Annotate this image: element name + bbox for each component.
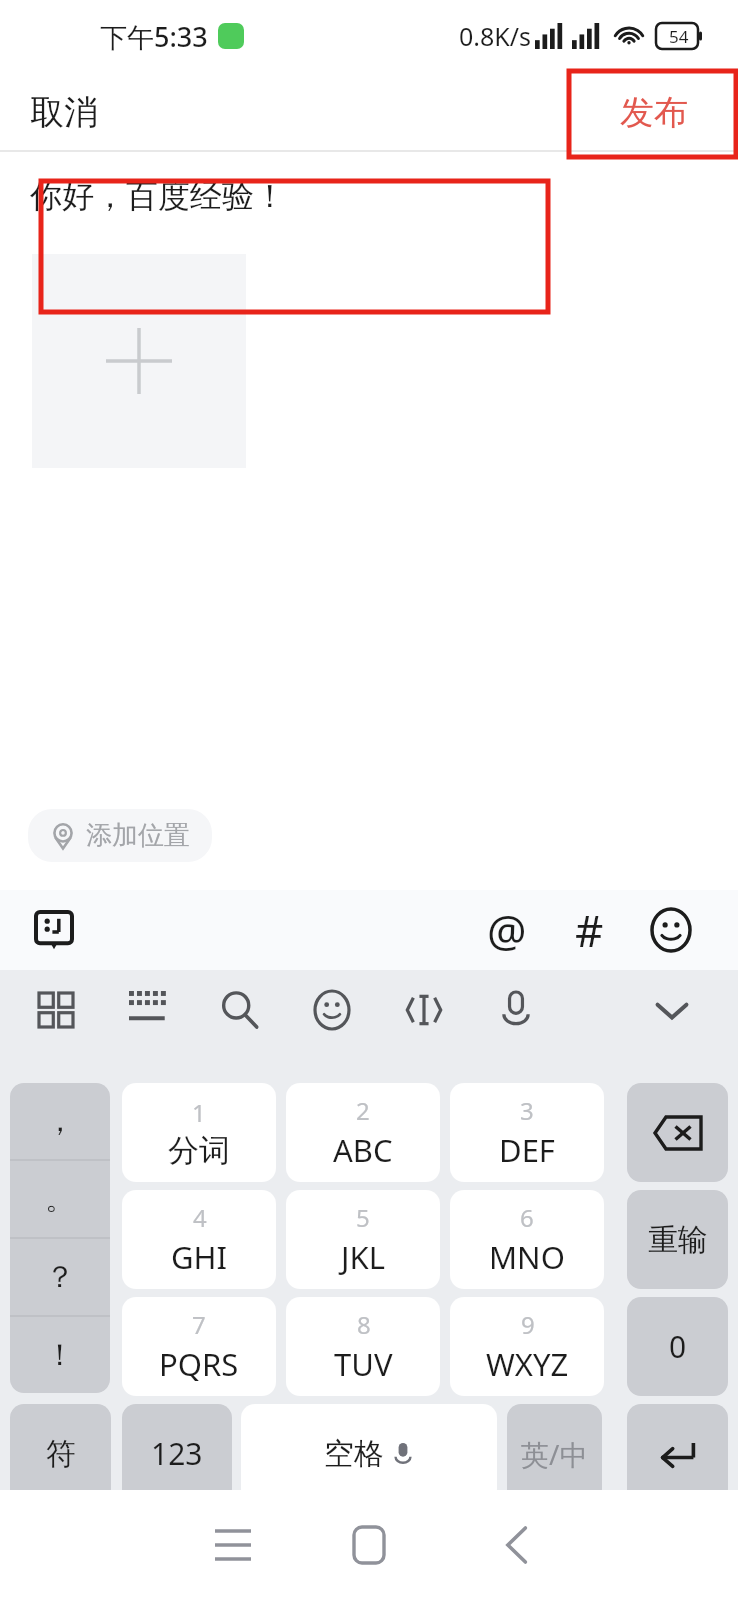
button[interactable]: ， — [10, 1083, 110, 1159]
staticText: @ — [487, 900, 527, 960]
button[interactable]: Voice input — [484, 978, 548, 1042]
button[interactable]: ？ — [10, 1239, 110, 1315]
button[interactable]: Keyboard — [116, 978, 180, 1042]
staticText: ABC — [333, 1129, 393, 1171]
button[interactable]: 。 — [10, 1161, 110, 1237]
staticText: 2 — [356, 1094, 370, 1127]
button[interactable]: 1 — [122, 1083, 276, 1182]
staticText: 3 — [520, 1094, 534, 1127]
staticText: PQRS — [159, 1343, 239, 1385]
staticText: ， — [45, 1102, 75, 1140]
staticText: JKL — [341, 1236, 385, 1278]
staticText: ？ — [45, 1258, 75, 1296]
staticText: 下午5:33 — [100, 18, 208, 55]
button[interactable]: 重输 — [627, 1190, 728, 1289]
button[interactable]: Emoji — [638, 897, 704, 963]
staticText: # — [575, 900, 604, 960]
button[interactable]: Home — [314, 1490, 424, 1600]
staticText: 发布 — [620, 91, 688, 134]
staticText: 123 — [151, 1433, 203, 1474]
staticText: ！ — [45, 1336, 75, 1374]
staticText: 4 — [193, 1201, 207, 1234]
button[interactable]: 添加位置 — [28, 809, 212, 862]
staticText: 添加位置 — [86, 819, 190, 852]
button[interactable]: 9 — [450, 1297, 604, 1396]
button[interactable]: 6 — [450, 1190, 604, 1289]
staticText: 0.8K/s — [459, 19, 532, 53]
button[interactable]: 0 — [627, 1297, 728, 1396]
button[interactable]: 7 — [122, 1297, 276, 1396]
button[interactable]: Hide keyboard — [640, 978, 704, 1042]
button[interactable]: Keyboard layout — [28, 904, 80, 956]
staticText: WXYZ — [486, 1343, 569, 1385]
staticText: GHI — [171, 1236, 228, 1278]
staticText: 分词 — [168, 1131, 230, 1170]
button[interactable]: 5 — [286, 1190, 440, 1289]
staticText: TUV — [334, 1343, 393, 1385]
staticText: 8 — [357, 1308, 371, 1341]
button[interactable]: 123 — [122, 1404, 232, 1503]
staticText: 5 — [356, 1201, 370, 1234]
staticText: 重输 — [648, 1221, 708, 1259]
staticText: 取消 — [30, 91, 98, 134]
staticText: 英/中 — [521, 1435, 588, 1473]
staticText: 1 — [192, 1096, 206, 1129]
button[interactable]: Back — [462, 1490, 572, 1600]
button[interactable]: 4 — [122, 1190, 276, 1289]
button[interactable]: 3 — [450, 1083, 604, 1182]
staticText: 。 — [45, 1180, 75, 1218]
button[interactable]: Emoji — [300, 978, 364, 1042]
button[interactable]: 英/中 — [507, 1404, 602, 1503]
staticText: 9 — [521, 1308, 535, 1341]
button[interactable]: 发布 — [612, 83, 696, 142]
staticText: MNO — [489, 1236, 565, 1278]
button[interactable]: 空格 — [241, 1404, 497, 1503]
button[interactable]: 你好，百度经验！ — [30, 176, 286, 216]
button[interactable]: 符 — [10, 1404, 111, 1503]
staticText: 空格 — [324, 1435, 384, 1473]
staticText: 符 — [46, 1435, 76, 1473]
button[interactable]: Grid — [24, 978, 88, 1042]
button[interactable]: Recent apps — [178, 1490, 288, 1600]
staticText: 7 — [192, 1308, 206, 1341]
staticText: 54 — [669, 25, 689, 48]
button[interactable]: 2 — [286, 1083, 440, 1182]
button[interactable]: Enter — [627, 1404, 728, 1503]
staticText: 6 — [520, 1201, 534, 1234]
button[interactable]: # — [556, 897, 622, 963]
button[interactable]: Cursor — [392, 978, 456, 1042]
button[interactable]: Backspace — [627, 1083, 728, 1182]
button[interactable]: Add photo — [32, 254, 246, 468]
button[interactable]: 取消 — [22, 83, 106, 142]
staticText: 0 — [669, 1326, 687, 1367]
button[interactable]: ！ — [10, 1317, 110, 1393]
button[interactable]: Search — [208, 978, 272, 1042]
staticText: DEF — [499, 1129, 555, 1171]
button[interactable]: 8 — [286, 1297, 440, 1396]
button[interactable]: @ — [474, 897, 540, 963]
